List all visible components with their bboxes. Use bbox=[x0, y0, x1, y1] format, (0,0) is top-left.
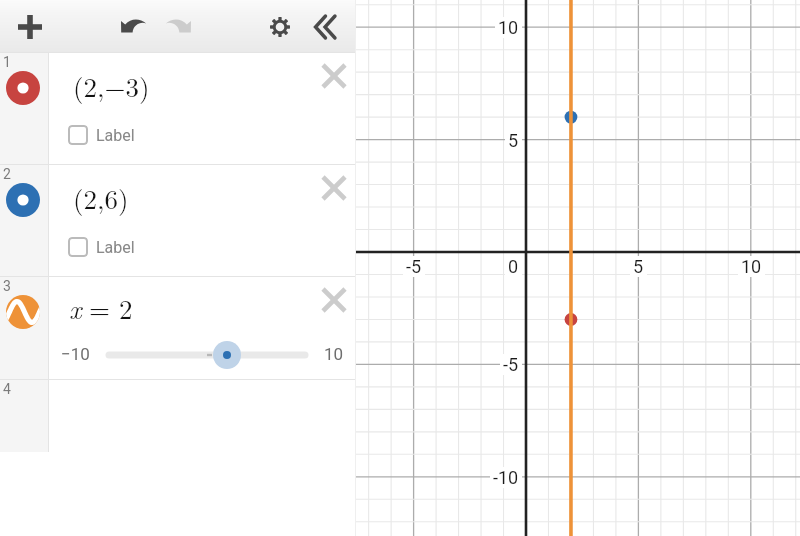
button[interactable]: Settings bbox=[254, 1, 306, 53]
button[interactable]: Label bbox=[68, 237, 135, 257]
staticText: 2 bbox=[3, 166, 11, 182]
staticText: -5 bbox=[406, 256, 422, 277]
staticText: -10 bbox=[493, 467, 519, 488]
staticText: x = 2 bbox=[69, 289, 133, 327]
staticText: (2,−3) bbox=[73, 67, 150, 105]
staticText: -5 bbox=[503, 354, 519, 375]
button[interactable]: Label bbox=[68, 125, 135, 145]
staticText: 3 bbox=[3, 278, 11, 294]
staticText: Label bbox=[96, 238, 135, 257]
staticText: 1 bbox=[3, 54, 11, 70]
staticText: 0 bbox=[508, 256, 519, 277]
staticText: (2,6) bbox=[73, 179, 129, 217]
staticText: 5 bbox=[508, 130, 519, 151]
staticText: Label bbox=[96, 126, 135, 145]
staticText: 10 bbox=[324, 344, 344, 364]
button[interactable]: 1 bbox=[0, 53, 356, 165]
button[interactable]: Delete expression 3 bbox=[317, 283, 351, 317]
button[interactable]: Undo bbox=[108, 1, 160, 53]
staticText: 10 bbox=[498, 17, 519, 38]
staticText: −10 bbox=[61, 344, 90, 364]
staticText: 10 bbox=[741, 256, 762, 277]
button[interactable]: 3 bbox=[0, 277, 356, 380]
button[interactable]: Add expression bbox=[4, 1, 56, 53]
button[interactable]: 2 bbox=[0, 165, 356, 277]
button[interactable]: Collapse panel bbox=[299, 1, 351, 53]
button[interactable]: Redo bbox=[152, 1, 204, 53]
staticText: 5 bbox=[633, 256, 644, 277]
button[interactable]: Delete expression 1 bbox=[317, 59, 351, 93]
button[interactable]: Delete expression 2 bbox=[317, 171, 351, 205]
staticText: 4 bbox=[3, 381, 11, 397]
